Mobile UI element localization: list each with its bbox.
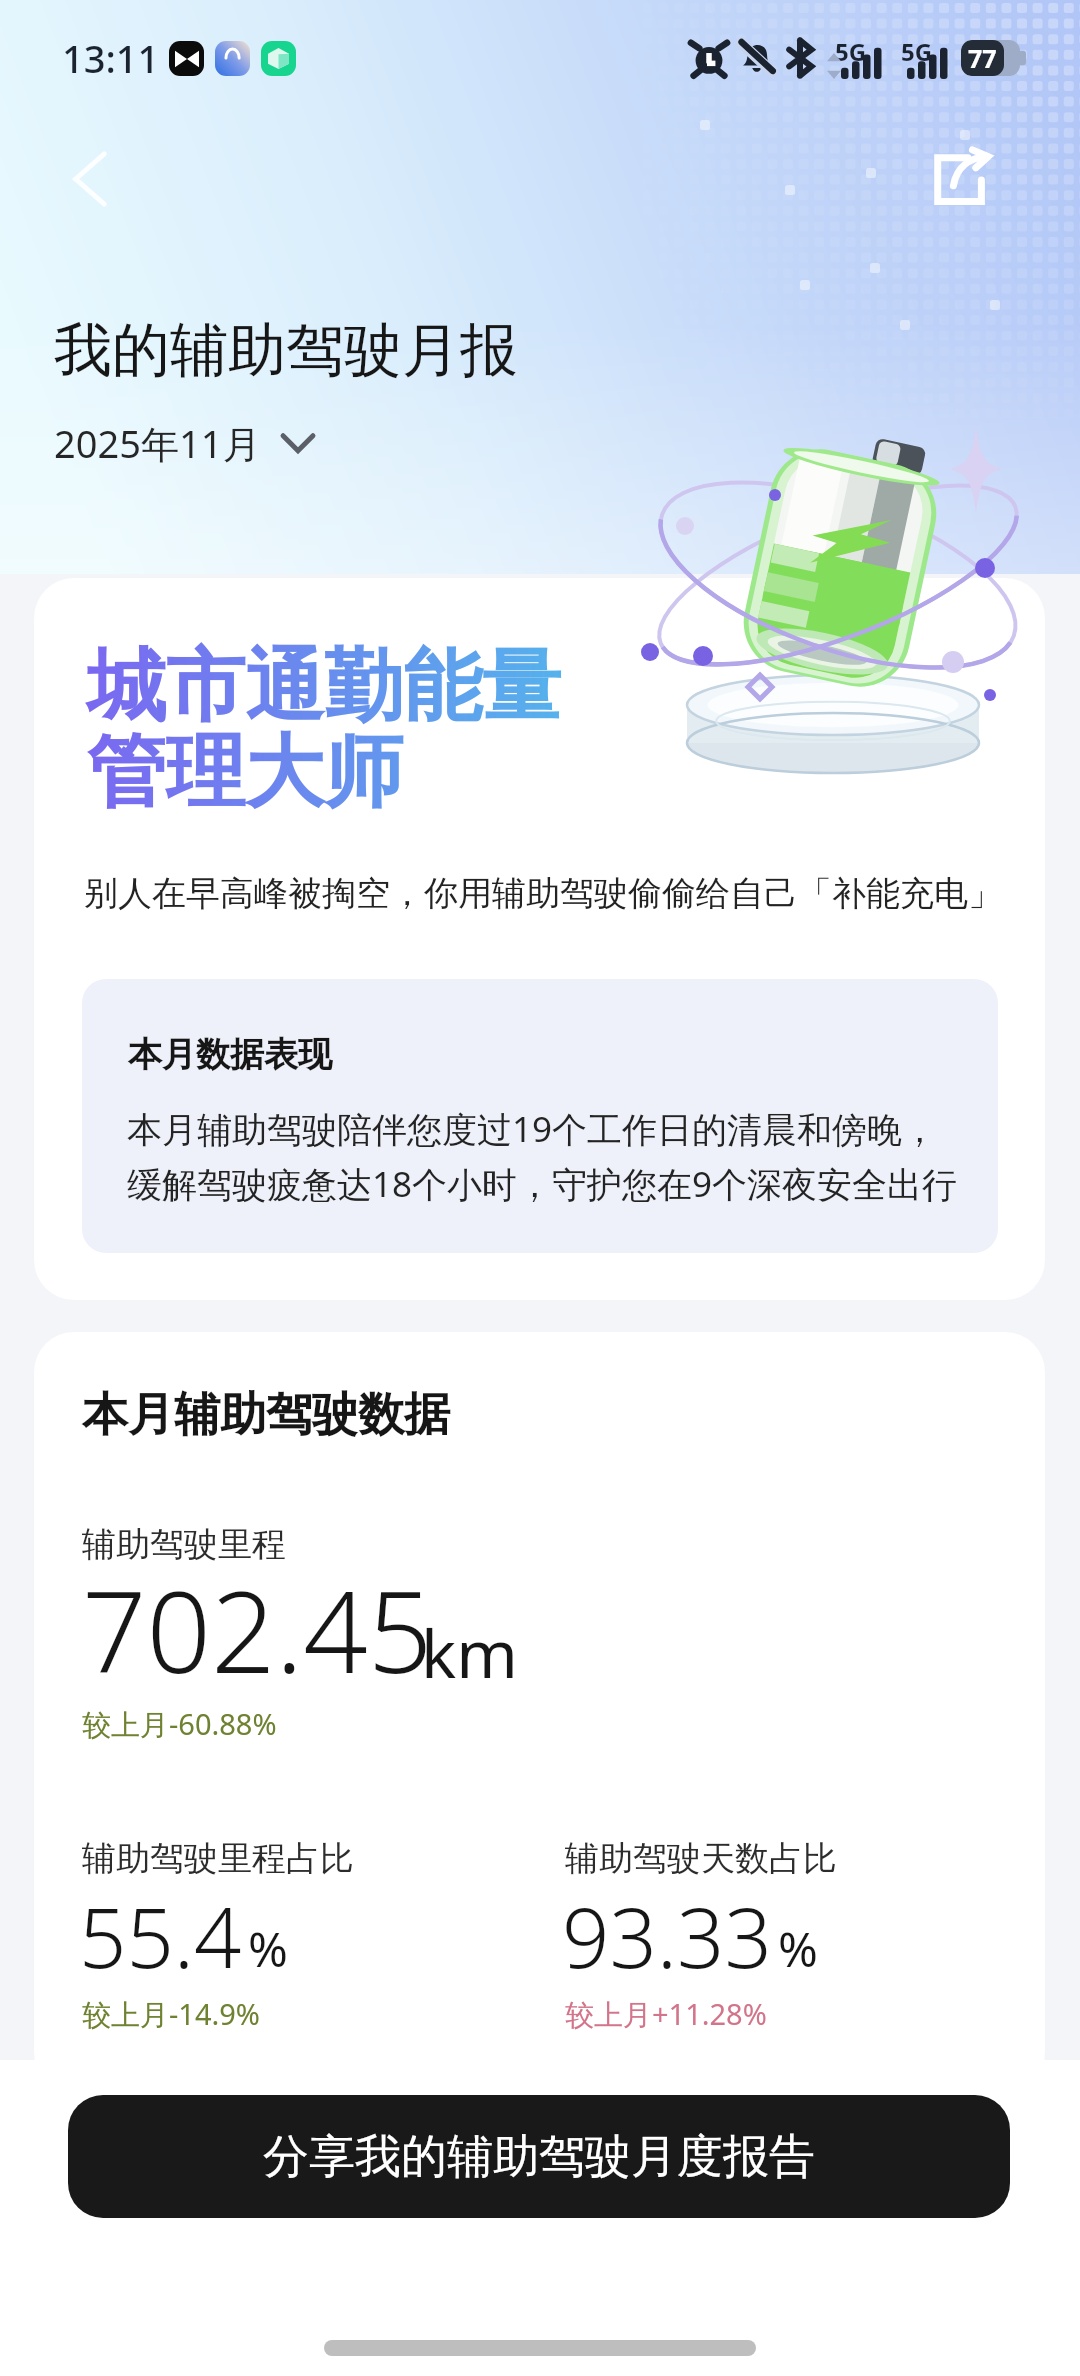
staticText: 5G [901,35,933,68]
staticText: 本月数据表现 [128,1033,332,1076]
button[interactable]: Back [52,141,128,217]
staticText: 本月辅助驾驶陪伴您度过19个工作日的清晨和傍晚， 缓解驾驶疲惫达18个小时，守护… [127,1105,958,1207]
staticText: 城市通勤能量 管理大师 [87,637,562,823]
staticText: 别人在早高峰被掏空，你用辅助驾驶偷偷给自己「补能充电」 [84,872,1002,915]
staticText: 本月辅助驾驶数据 [82,1386,450,1444]
staticText: 辅助驾驶里程 [82,1523,286,1566]
staticText: 13:11 [62,32,160,84]
staticText: % [778,1916,818,1981]
staticText: 较上月+11.28% [565,1994,767,2034]
button[interactable]: 分享我的辅助驾驶月度报告 [68,2095,1010,2218]
staticText: 我的辅助驾驶月报 [54,314,518,387]
button[interactable]: Share [919,139,999,219]
staticText: 辅助驾驶里程占比 [82,1837,354,1880]
staticText: 分享我的辅助驾驶月度报告 [263,2128,815,2186]
staticText: 辅助驾驶天数占比 [565,1837,837,1880]
staticText: 55.4 [79,1879,242,1992]
staticText: 702.45 [82,1552,433,1706]
staticText: 2025年11月 [54,417,261,469]
staticText: 77 [968,41,997,75]
staticText: km [421,1607,518,1697]
staticText: 5G [835,35,867,68]
staticText: % [248,1916,288,1981]
staticText: 较上月-14.9% [82,1994,260,2034]
staticText: 较上月-60.88% [82,1704,277,1744]
staticText: 93.33 [562,1879,772,1992]
